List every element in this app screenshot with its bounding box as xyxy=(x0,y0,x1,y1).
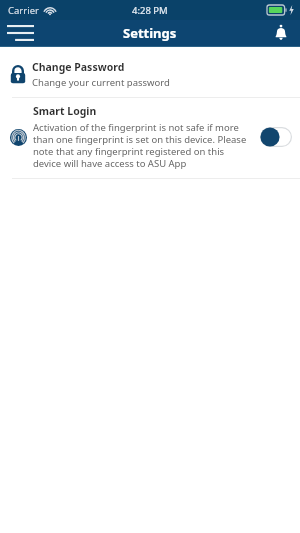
button[interactable]: Change Password xyxy=(0,58,300,93)
button[interactable]: Notifications xyxy=(262,20,300,46)
staticText: Change Password xyxy=(32,60,125,74)
staticText: Settings xyxy=(123,24,177,42)
staticText: Carrier xyxy=(8,4,39,17)
button[interactable]: Open navigation menu xyxy=(0,20,40,46)
button[interactable]: Smart Login xyxy=(0,98,300,178)
staticText: 4:28 PM xyxy=(132,4,168,17)
staticText: Activation of the fingerprint is not saf… xyxy=(33,121,254,170)
staticText: Smart Login xyxy=(33,104,97,118)
staticText: Change your current password xyxy=(32,76,170,89)
button[interactable]: Smart Login toggle xyxy=(260,127,292,147)
